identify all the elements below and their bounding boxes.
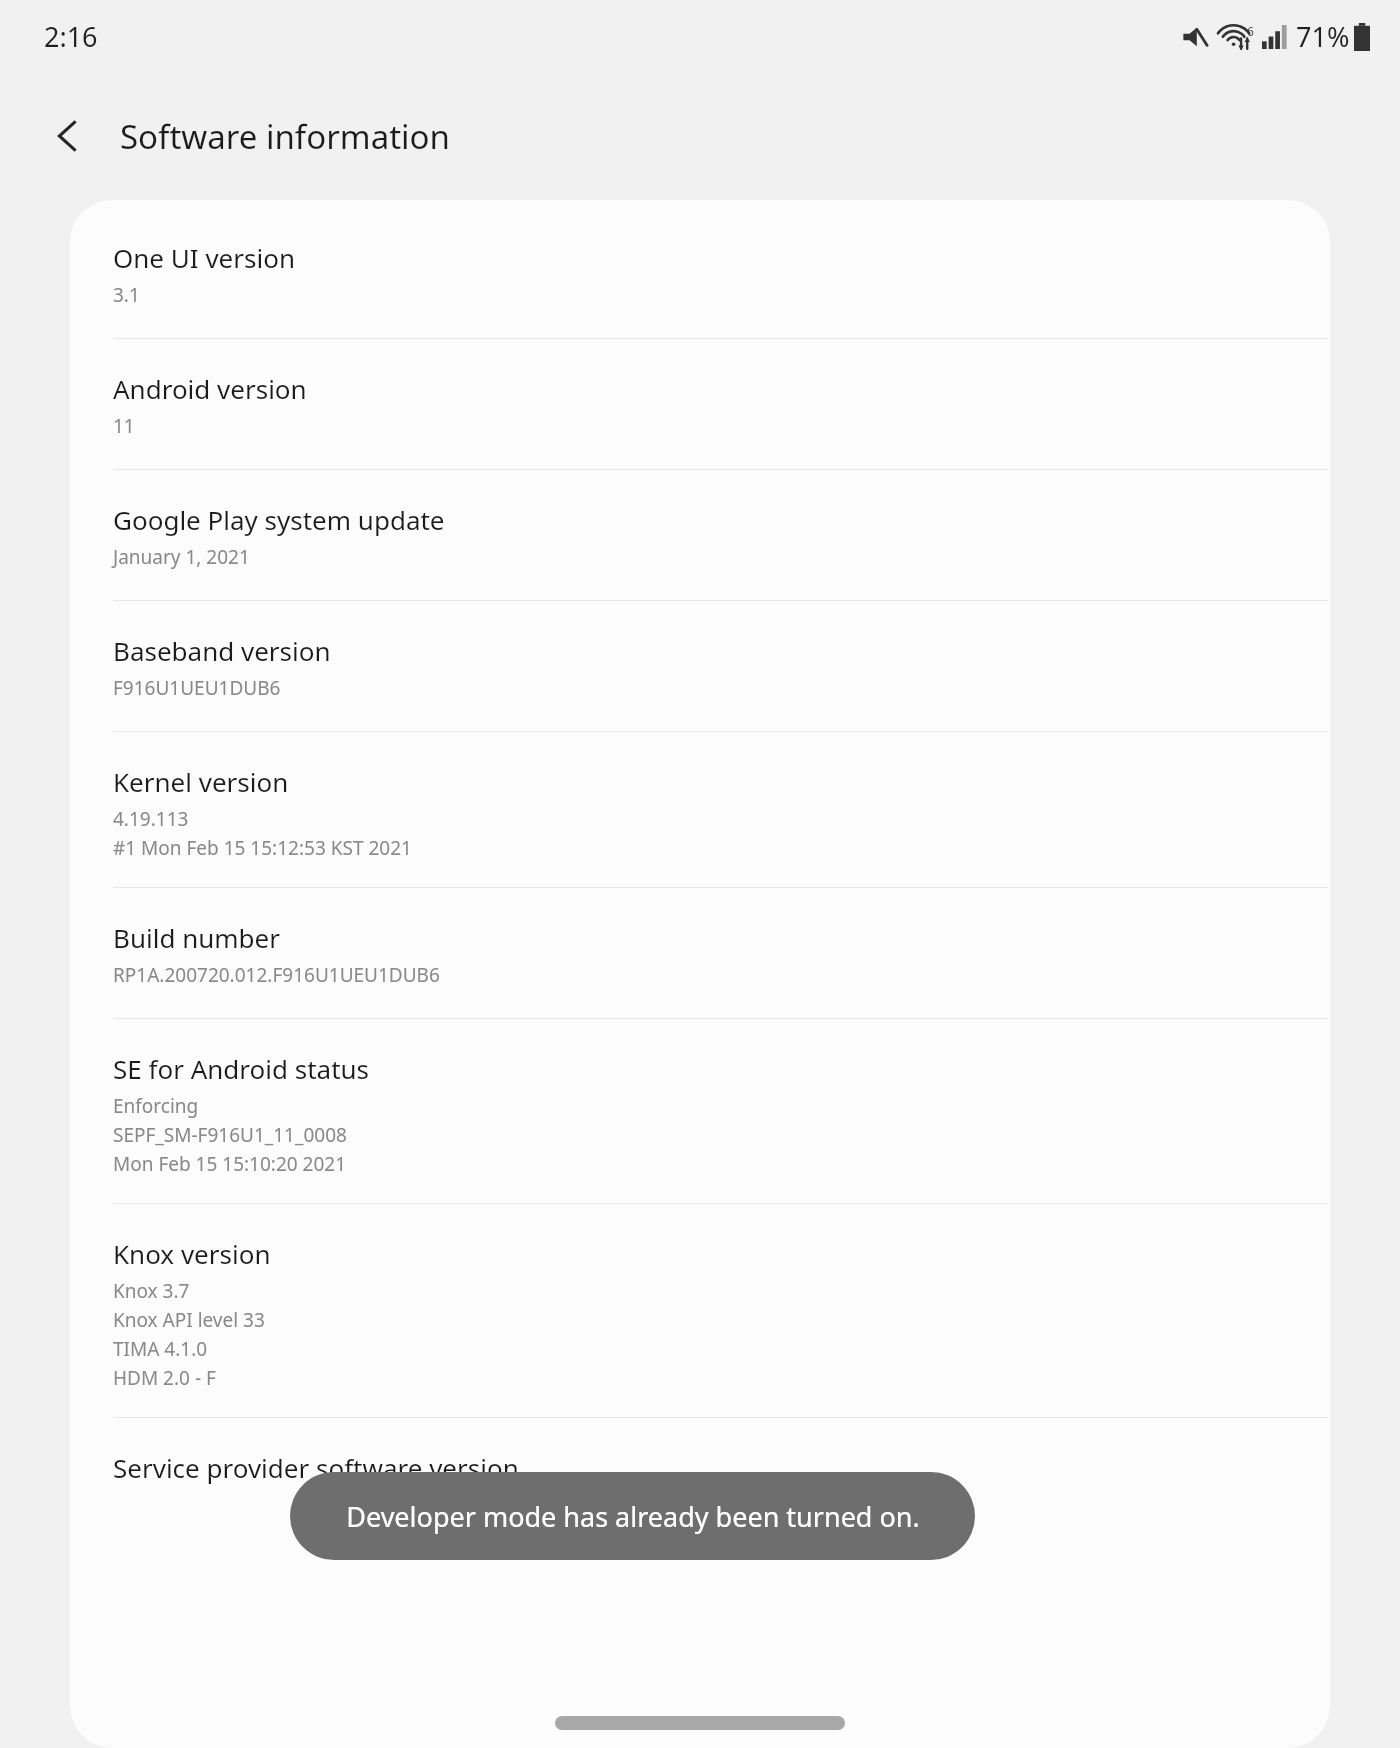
staticText: Mon Feb 15 15:10:20 2021 bbox=[113, 1151, 347, 1177]
staticText: January 1, 2021 bbox=[113, 544, 250, 570]
staticText: 3.1 bbox=[113, 282, 140, 308]
staticText: Software information bbox=[120, 114, 450, 159]
button[interactable]: Android version bbox=[70, 339, 1330, 470]
staticText: TIMA 4.1.0 bbox=[113, 1336, 208, 1362]
staticText: One UI version bbox=[113, 240, 295, 275]
staticText: 4.19.113 bbox=[113, 806, 189, 832]
button[interactable]: Google Play system update bbox=[70, 470, 1330, 601]
staticText: Kernel version bbox=[113, 764, 289, 799]
staticText: 6 bbox=[1247, 23, 1254, 39]
staticText: Baseband version bbox=[113, 633, 331, 668]
staticText: Knox API level 33 bbox=[113, 1307, 265, 1333]
staticText: Knox version bbox=[113, 1236, 271, 1271]
button[interactable]: One UI version bbox=[70, 200, 1330, 339]
staticText: SE for Android status bbox=[113, 1051, 370, 1086]
staticText: #1 Mon Feb 15 15:12:53 KST 2021 bbox=[113, 835, 412, 861]
staticText: Enforcing bbox=[113, 1093, 199, 1119]
button[interactable]: Kernel version bbox=[70, 732, 1330, 888]
staticText: 2:16 bbox=[44, 18, 98, 55]
staticText: Service provider software version bbox=[113, 1450, 519, 1485]
staticText: Build number bbox=[113, 920, 280, 955]
staticText: 11 bbox=[113, 413, 135, 439]
button[interactable]: Knox version bbox=[70, 1204, 1330, 1418]
button[interactable]: SE for Android status bbox=[70, 1019, 1330, 1204]
staticText: Knox 3.7 bbox=[113, 1278, 190, 1304]
staticText: SEPF_SM-F916U1_11_0008 bbox=[113, 1122, 347, 1148]
staticText: Developer mode has already been turned o… bbox=[346, 1498, 920, 1535]
staticText: HDM 2.0 - F bbox=[113, 1365, 216, 1391]
button[interactable]: Service provider software version bbox=[70, 1418, 1330, 1485]
staticText: 71% bbox=[1296, 18, 1350, 55]
staticText: RP1A.200720.012.F916U1UEU1DUB6 bbox=[113, 962, 440, 988]
staticText: Google Play system update bbox=[113, 502, 445, 537]
button[interactable]: Build number bbox=[70, 888, 1330, 1019]
staticText: F916U1UEU1DUB6 bbox=[113, 675, 281, 701]
button[interactable]: Back bbox=[26, 94, 110, 178]
staticText: Android version bbox=[113, 371, 307, 406]
button[interactable]: Baseband version bbox=[70, 601, 1330, 732]
